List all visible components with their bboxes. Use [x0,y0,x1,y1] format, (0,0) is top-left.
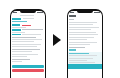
button[interactable] [12,65,44,68]
button[interactable] [12,69,44,72]
other: Next step [53,34,61,46]
